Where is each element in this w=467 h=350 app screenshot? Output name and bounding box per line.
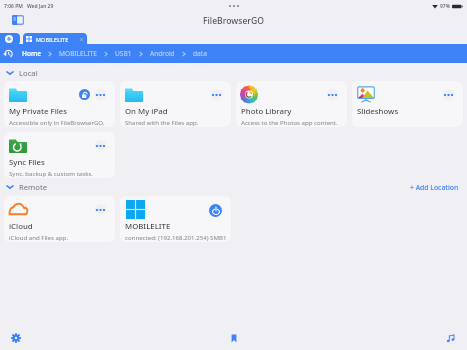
button[interactable]: MOBILELITE (23, 33, 87, 45)
button[interactable]: Settings (6, 328, 25, 348)
button[interactable]: More options (443, 89, 454, 100)
button[interactable]: More (226, 2, 242, 10)
button[interactable]: More options (95, 204, 106, 215)
staticText: Photo Library (241, 106, 292, 117)
staticText: Slideshows (357, 106, 399, 117)
button[interactable]: More options (120, 81, 231, 127)
staticText: Remote (19, 182, 48, 192)
button[interactable]: Private, locked (79, 89, 90, 100)
button[interactable]: More options (95, 89, 106, 100)
button[interactable]: Private, locked (4, 81, 115, 127)
button[interactable]: Recent locations (3, 49, 13, 59)
staticText: MOBILELITE (36, 36, 69, 43)
button[interactable]: More options (95, 140, 106, 151)
button[interactable]: MOBILELITE (59, 49, 97, 58)
button[interactable]: More options (4, 132, 115, 178)
staticText: MOBILELITE (125, 221, 171, 232)
staticText: My Private Files (9, 106, 68, 117)
button[interactable]: More options (236, 81, 347, 127)
button[interactable]: data (193, 49, 207, 58)
staticText: Accessible only in FileBrowserGO. (9, 118, 105, 126)
button[interactable]: Remote (5, 182, 49, 192)
staticText: 97% (440, 3, 450, 10)
staticText: Sync Files (9, 157, 45, 168)
button[interactable]: Android (150, 49, 175, 58)
button[interactable]: Home (22, 49, 41, 58)
staticText: FileBrowserGO (203, 15, 264, 27)
button[interactable]: More options (327, 89, 338, 100)
button[interactable]: More options (4, 196, 115, 242)
button[interactable]: New tab (0, 33, 20, 45)
staticText: iCloud (9, 221, 33, 232)
button[interactable]: Disconnect (120, 196, 231, 242)
button[interactable]: Toggle sidebar (12, 15, 24, 25)
button[interactable]: + Add Location (410, 183, 459, 192)
button[interactable]: More options (211, 89, 222, 100)
button[interactable]: Bookmarks (224, 328, 243, 348)
staticText: + Add Location (410, 183, 459, 192)
staticText: connected: (192.168.201.254) SMB1 (125, 233, 227, 241)
staticText: Sync, backup & custom tasks. (9, 169, 93, 177)
staticText: 7:06 PM (4, 3, 23, 10)
button[interactable]: Local (5, 68, 39, 78)
staticText: On My iPad (125, 106, 168, 117)
staticText: Shared with the Files app. (125, 118, 199, 126)
button[interactable]: Disconnect (209, 204, 222, 217)
button[interactable]: Music (441, 328, 460, 348)
staticText: Wed Jan 29 (27, 3, 54, 10)
button[interactable]: More options (352, 81, 463, 127)
button[interactable]: USB1 (115, 49, 132, 58)
staticText: iCloud and Files app. (9, 233, 69, 241)
staticText: Local (19, 68, 38, 78)
staticText: Access to the Photos app content. (241, 118, 338, 126)
